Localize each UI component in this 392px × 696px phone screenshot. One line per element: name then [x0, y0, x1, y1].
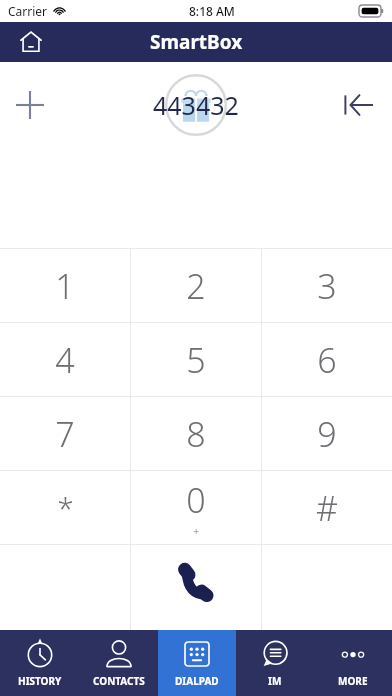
- staticText: MORE: [338, 674, 368, 688]
- staticText: 1: [55, 263, 75, 309]
- button[interactable]: 8: [131, 397, 261, 470]
- button[interactable]: 0: [131, 471, 261, 544]
- button[interactable]: #: [262, 471, 392, 544]
- staticText: 4: [55, 337, 75, 383]
- staticText: 8:18 AM: [189, 3, 235, 19]
- button[interactable]: Home: [14, 25, 48, 59]
- staticText: 7: [55, 411, 75, 457]
- staticText: 3: [317, 263, 337, 309]
- button[interactable]: Add contact: [6, 81, 54, 129]
- button[interactable]: 7: [0, 397, 130, 470]
- button[interactable]: *: [0, 471, 130, 544]
- button[interactable]: 6: [262, 323, 392, 396]
- button[interactable]: 5: [131, 323, 261, 396]
- staticText: HISTORY: [18, 674, 62, 688]
- button[interactable]: MORE: [314, 630, 392, 696]
- staticText: 5: [186, 337, 206, 383]
- staticText: DIALPAD: [175, 674, 219, 688]
- staticText: 6: [317, 337, 337, 383]
- staticText: Carrier: [8, 3, 48, 19]
- staticText: CONTACTS: [93, 674, 145, 688]
- staticText: 2: [186, 263, 206, 309]
- staticText: IM: [268, 674, 282, 688]
- button[interactable]: Call: [131, 545, 261, 630]
- staticText: #: [316, 485, 338, 531]
- button[interactable]: IM: [236, 630, 314, 696]
- button[interactable]: 9: [262, 397, 392, 470]
- staticText: 9: [317, 411, 337, 457]
- staticText: 443432: [153, 88, 239, 122]
- button[interactable]: Clear: [334, 81, 382, 129]
- button[interactable]: DIALPAD: [158, 630, 236, 696]
- staticText: 0: [186, 477, 206, 523]
- staticText: 8: [186, 411, 206, 457]
- staticText: *: [57, 487, 74, 528]
- button[interactable]: 1: [0, 249, 130, 322]
- button[interactable]: HISTORY: [0, 630, 79, 696]
- button[interactable]: 4: [0, 323, 130, 396]
- staticText: +: [193, 523, 200, 538]
- button[interactable]: 2: [131, 249, 261, 322]
- button[interactable]: 3: [262, 249, 392, 322]
- staticText: SmartBox: [150, 29, 243, 55]
- button[interactable]: CONTACTS: [79, 630, 158, 696]
